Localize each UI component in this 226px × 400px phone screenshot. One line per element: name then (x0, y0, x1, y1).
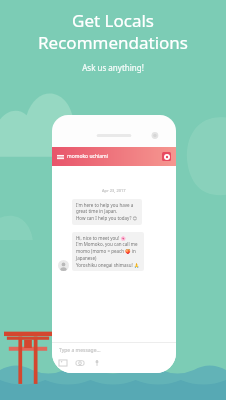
button[interactable]: Camera (76, 359, 84, 367)
staticText: Type a message... (59, 347, 101, 354)
button[interactable]: I'm here to help you have a great time i… (72, 199, 142, 225)
staticText: I'm here to help you have a great time i… (76, 202, 138, 222)
other: Menu (57, 153, 64, 160)
staticText: Get Locals Recommendations (38, 9, 188, 54)
button[interactable]: Voice message (93, 359, 101, 367)
staticText: Apr 23, 2017 (102, 188, 126, 193)
button[interactable]: Avatar (58, 260, 69, 271)
staticText: Ask us anything! (82, 62, 144, 73)
button[interactable]: Type a message... (59, 347, 169, 354)
button[interactable]: Info (162, 152, 171, 161)
staticText: momoko uchiami (67, 153, 109, 160)
staticText: Hi, nice to meet you! 🌸 I'm Momoko, you … (76, 235, 140, 268)
button[interactable]: Send photo (59, 359, 67, 367)
button[interactable]: Hi, nice to meet you! 🌸 I'm Momoko, you … (72, 232, 144, 271)
button[interactable]: Menu (52, 147, 176, 166)
